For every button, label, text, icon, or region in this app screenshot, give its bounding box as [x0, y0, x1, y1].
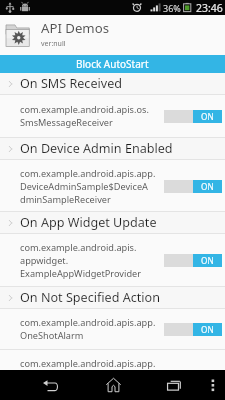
staticText: ver:null: [41, 39, 66, 49]
button[interactable]: On App Widget Update: [0, 212, 225, 233]
button[interactable]: com.example.android.apis.: [0, 234, 225, 286]
staticText: com.example.android.apis.app.: [20, 357, 156, 370]
button[interactable]: com.example.android.apis.app.: [0, 160, 225, 212]
staticText: On Device Admin Enabled: [20, 140, 173, 157]
button[interactable]: Recent apps: [161, 370, 187, 400]
staticText: ON: [201, 255, 214, 266]
button[interactable]: On Not Specified Action: [0, 287, 225, 308]
staticText: On App Widget Update: [20, 214, 157, 231]
staticText: API Demos: [41, 19, 109, 37]
button[interactable]: More options: [202, 370, 224, 400]
staticText: com.example.android.apis.: [20, 241, 137, 254]
button[interactable]: Block AutoStart: [0, 55, 225, 73]
staticText: com.example.android.apis.os.: [20, 103, 149, 116]
staticText: SmsMessageReceiver: [20, 116, 113, 129]
staticText: com.example.android.apis.app.: [20, 316, 156, 329]
staticText: 23:46: [196, 1, 223, 15]
staticText: On SMS Received: [20, 75, 122, 92]
staticText: OneShotAlarm: [20, 329, 84, 342]
staticText: appwidget.: [20, 254, 69, 267]
staticText: dminSampleReceiver: [20, 193, 111, 206]
staticText: com.example.android.apis.app.: [20, 167, 156, 180]
staticText: ON: [201, 111, 214, 122]
staticText: Block AutoStart: [76, 57, 149, 71]
staticText: On Not Specified Action: [20, 289, 160, 306]
staticText: ON: [201, 181, 214, 192]
button[interactable]: com.example.android.apis.app.: [0, 309, 225, 349]
button[interactable]: com.example.android.apis.app.: [0, 350, 225, 370]
button[interactable]: Back: [36, 370, 64, 400]
button[interactable]: On SMS Received: [0, 73, 225, 94]
button[interactable]: com.example.android.apis.os.: [0, 95, 225, 137]
button[interactable]: Home: [99, 370, 127, 400]
staticText: DeviceAdminSample$DeviceA: [20, 180, 148, 193]
staticText: 36%: [163, 2, 181, 14]
staticText: ExampleAppWidgetProvider: [20, 267, 142, 280]
button[interactable]: On Device Admin Enabled: [0, 138, 225, 159]
staticText: ON: [201, 324, 214, 335]
